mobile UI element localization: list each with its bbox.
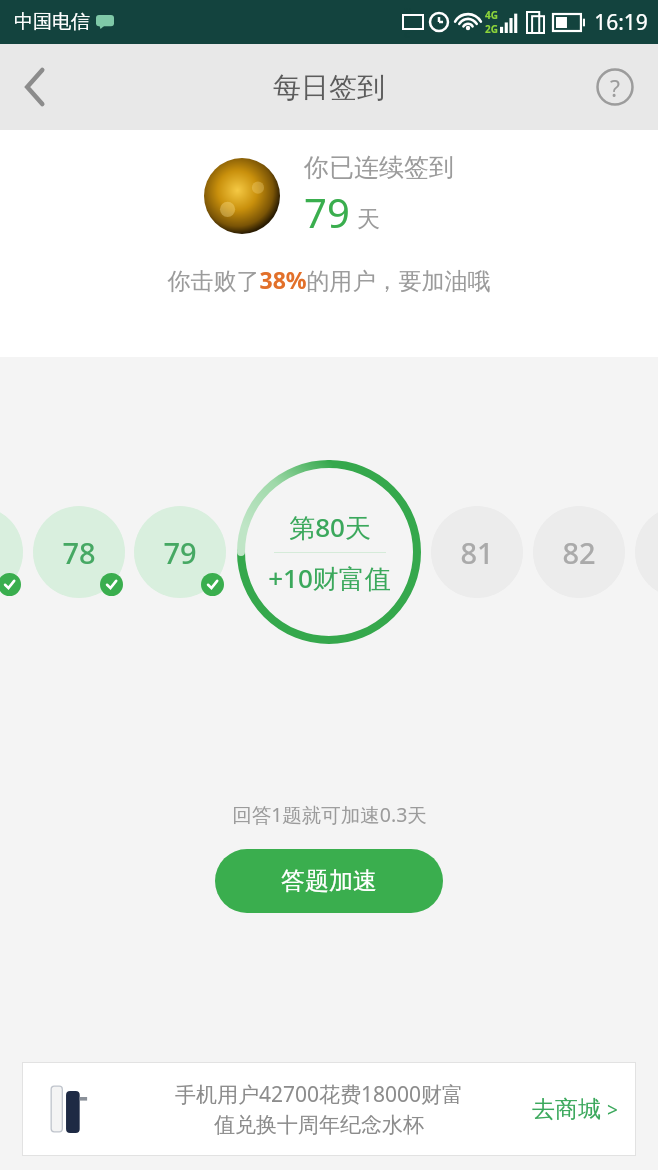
button[interactable]: Help xyxy=(594,66,636,108)
staticText: +10财富值 xyxy=(268,560,391,596)
button[interactable]: 79 xyxy=(134,506,226,598)
button[interactable]: 82 xyxy=(533,506,625,598)
staticText: 79 xyxy=(304,185,350,239)
button[interactable]: 77 xyxy=(0,506,23,598)
staticText: 你击败了38%的用户，要加油哦 xyxy=(167,264,491,295)
button[interactable]: 83 xyxy=(635,506,658,598)
staticText: 4G xyxy=(485,8,498,22)
staticText: 81 xyxy=(460,533,494,572)
staticText: 回答1题就可加速0.3天 xyxy=(232,801,427,828)
staticText: 每日签到 xyxy=(273,70,385,105)
staticText: 2G xyxy=(485,22,498,36)
staticText: > xyxy=(607,1097,618,1123)
button[interactable]: Back xyxy=(0,52,70,122)
staticText: 答题加速 xyxy=(281,866,377,896)
button[interactable]: 81 xyxy=(431,506,523,598)
staticText: 第80天 xyxy=(289,509,371,545)
staticText: 中国电信 xyxy=(14,10,90,34)
button[interactable]: 第80天 xyxy=(237,460,421,644)
staticText: 78 xyxy=(62,533,96,572)
staticText: 你已连续签到 xyxy=(304,152,454,183)
staticText: 去商城 xyxy=(532,1095,601,1124)
button[interactable]: 手机用户42700花费18000财富 xyxy=(22,1062,636,1156)
staticText: 值兑换十周年纪念水杯 xyxy=(114,1112,524,1138)
staticText: 79 xyxy=(163,533,197,572)
staticText: 16:19 xyxy=(594,8,648,37)
button[interactable]: 78 xyxy=(33,506,125,598)
staticText: 天 xyxy=(357,205,380,234)
staticText: 82 xyxy=(562,533,596,572)
button[interactable]: 答题加速 xyxy=(215,849,443,913)
staticText: 手机用户42700花费18000财富 xyxy=(114,1080,524,1109)
staticText: ? xyxy=(610,72,620,103)
